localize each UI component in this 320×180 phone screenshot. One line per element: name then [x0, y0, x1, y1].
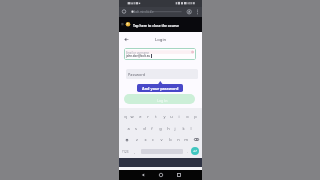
button[interactable]: o — [183, 112, 191, 121]
staticText: h — [167, 126, 170, 131]
button[interactable]: l — [187, 124, 195, 133]
button[interactable]: Home — [156, 170, 165, 180]
button[interactable]: g — [156, 124, 164, 133]
staticText: ?123 — [122, 150, 129, 154]
staticText: c — [152, 137, 154, 142]
staticText: d — [143, 126, 146, 131]
staticText: e — [139, 114, 142, 119]
button[interactable]: Comma — [132, 148, 137, 155]
button[interactable]: j — [171, 124, 179, 133]
button[interactable]: s — [132, 124, 140, 133]
staticText: n — [177, 137, 180, 142]
button[interactable]: v — [157, 135, 165, 144]
staticText: m — [184, 137, 188, 142]
staticText: f — [151, 126, 153, 131]
button[interactable]: Period — [185, 148, 190, 155]
button[interactable]: Backspace — [192, 135, 200, 144]
button[interactable]: Tap here to close the course — [119, 17, 202, 32]
staticText: Email or username — [126, 51, 149, 55]
button[interactable]: d — [140, 124, 148, 133]
button[interactable]: b — [166, 135, 174, 144]
button[interactable]: k — [179, 124, 187, 133]
staticText: , — [134, 149, 135, 154]
button[interactable]: c — [149, 135, 157, 144]
button[interactable]: Shift — [123, 135, 131, 144]
button[interactable]: i — [175, 112, 183, 121]
staticText: s — [135, 126, 137, 131]
button[interactable]: u — [167, 112, 175, 121]
button[interactable]: e — [136, 112, 144, 121]
button[interactable]: Password — [126, 69, 198, 79]
staticText: Login — [155, 37, 167, 43]
button[interactable]: Back — [122, 35, 131, 44]
button[interactable]: Enter — [191, 147, 199, 155]
staticText: Log in — [157, 98, 168, 103]
button[interactable]: m — [182, 135, 190, 144]
button[interactable]: And your password — [137, 84, 183, 92]
staticText: k — [182, 126, 185, 131]
staticText: john.doe@bolt.eu — [126, 54, 151, 58]
button[interactable]: Email or username — [124, 48, 196, 60]
button[interactable]: Recent apps — [174, 170, 183, 180]
staticText: x — [144, 137, 147, 142]
staticText: o — [186, 114, 189, 119]
button[interactable]: Symbols — [121, 148, 130, 155]
button[interactable]: f — [148, 124, 156, 133]
staticText: . — [187, 149, 188, 154]
button[interactable]: x — [141, 135, 149, 144]
button[interactable]: y — [160, 112, 168, 121]
staticText: w — [130, 114, 134, 119]
button[interactable]: h — [164, 124, 172, 133]
staticText: g — [159, 126, 162, 131]
button[interactable]: q — [121, 112, 129, 121]
staticText: v — [160, 137, 163, 142]
staticText: y — [163, 114, 166, 119]
button[interactable]: r — [144, 112, 152, 121]
staticText: z — [136, 137, 138, 142]
button[interactable]: t — [152, 112, 160, 121]
staticText: r — [147, 114, 149, 119]
button[interactable]: Back — [138, 170, 147, 180]
button[interactable]: z — [133, 135, 141, 144]
staticText: Tap here to close the course — [133, 23, 179, 27]
staticText: q — [124, 114, 127, 119]
staticText: p — [194, 114, 197, 119]
button[interactable]: w — [128, 112, 136, 121]
staticText: a — [127, 126, 130, 131]
staticText: b — [169, 137, 172, 142]
staticText: i — [178, 114, 180, 119]
button[interactable]: Log in — [124, 94, 195, 104]
staticText: t — [155, 114, 157, 119]
staticText: bolt.mindtickle — [134, 10, 154, 14]
button[interactable]: n — [174, 135, 182, 144]
staticText: Password — [128, 72, 146, 77]
button[interactable]: a — [124, 124, 132, 133]
button[interactable]: p — [191, 112, 199, 121]
staticText: u — [170, 114, 173, 119]
staticText: l — [190, 126, 192, 131]
staticText: And your password — [142, 86, 179, 91]
staticText: j — [174, 126, 176, 131]
